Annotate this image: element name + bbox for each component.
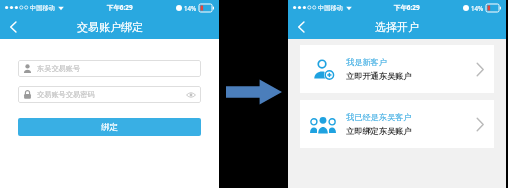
staticText: 交易账号交易密码: [37, 90, 95, 99]
staticText: 立即开通东吴账户: [346, 71, 412, 81]
button[interactable]: 东吴交易账号: [18, 60, 201, 77]
other: Show password: [186, 92, 196, 98]
staticText: 交易账户绑定: [77, 20, 143, 34]
staticText: 下午6:29: [107, 3, 133, 12]
staticText: 下午6:29: [394, 3, 420, 12]
staticText: 立即绑定东吴账户: [346, 126, 412, 136]
button[interactable]: 我是新客户: [300, 45, 494, 93]
button[interactable]: 绑定: [18, 118, 201, 136]
button[interactable]: 交易账号交易密码: [18, 86, 201, 103]
staticText: 14%: [184, 4, 197, 12]
staticText: 中国移动: [318, 4, 343, 12]
staticText: 中国移动: [30, 4, 55, 12]
button[interactable]: 我已经是东吴客户: [300, 100, 494, 148]
staticText: 选择开户: [375, 20, 419, 34]
staticText: 14%: [471, 4, 484, 12]
staticText: 绑定: [101, 122, 118, 133]
staticText: 我是新客户: [346, 57, 387, 67]
staticText: 我已经是东吴客户: [346, 112, 412, 122]
button[interactable]: Back: [288, 15, 315, 39]
staticText: 东吴交易账号: [37, 64, 81, 73]
button[interactable]: Back: [0, 15, 27, 39]
